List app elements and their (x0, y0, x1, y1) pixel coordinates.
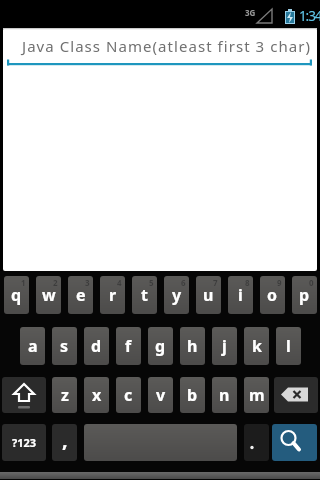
staticText: 6 (181, 277, 186, 288)
button[interactable] (274, 377, 318, 413)
button[interactable]: d (84, 327, 109, 365)
staticText: d (91, 335, 102, 357)
button[interactable]: g (148, 327, 173, 365)
button[interactable]: l (276, 327, 301, 365)
staticText: t (141, 284, 148, 306)
button[interactable]: s (52, 327, 77, 365)
button[interactable]: h (180, 327, 205, 365)
staticText: e (76, 284, 86, 306)
staticText: 2 (53, 277, 58, 288)
staticText: 7 (213, 277, 218, 288)
staticText: 4 (117, 277, 122, 288)
button[interactable]: b (180, 377, 205, 413)
staticText: k (252, 335, 262, 357)
staticText: 0 (309, 277, 314, 288)
staticText: n (219, 384, 230, 406)
staticText: 1 (21, 277, 26, 288)
button[interactable]: x (84, 377, 109, 413)
staticText: b (187, 384, 198, 406)
button[interactable]: p (292, 276, 317, 314)
staticText: w (42, 284, 56, 306)
staticText: 3G (245, 7, 256, 18)
button[interactable]: y (164, 276, 189, 314)
staticText: o (267, 284, 278, 306)
staticText: i (238, 284, 243, 306)
staticText: z (61, 384, 69, 406)
staticText: c (124, 384, 133, 406)
button[interactable]: a (20, 327, 45, 365)
staticText: f (125, 335, 132, 357)
button[interactable]: f (116, 327, 141, 365)
staticText: v (156, 384, 166, 406)
button[interactable]: q (4, 276, 29, 314)
staticText: x (92, 384, 102, 406)
button[interactable]: t (132, 276, 157, 314)
staticText: 9 (277, 277, 282, 288)
staticText: l (286, 335, 291, 357)
button[interactable]: m (244, 377, 269, 413)
button[interactable]: e (68, 276, 93, 314)
staticText: s (60, 335, 69, 357)
staticText: Java Class Name(atleast first 3 char) (22, 36, 311, 56)
button[interactable]: Java Class Name(atleast first 3 char) (3, 28, 317, 66)
staticText: 3 (85, 277, 90, 288)
button[interactable]: j (212, 327, 237, 365)
button[interactable] (84, 424, 237, 461)
staticText: q (11, 284, 22, 306)
staticText: h (187, 335, 198, 357)
button[interactable]: w (36, 276, 61, 314)
button[interactable]: o (260, 276, 285, 314)
staticText: u (203, 284, 214, 306)
staticText: g (155, 335, 166, 357)
button[interactable]: v (148, 377, 173, 413)
staticText: j (222, 335, 227, 357)
button[interactable]: z (52, 377, 77, 413)
button[interactable]: i (228, 276, 253, 314)
button[interactable]: k (244, 327, 269, 365)
staticText: y (172, 284, 182, 306)
staticText: 8 (245, 277, 250, 288)
button[interactable]: u (196, 276, 221, 314)
button[interactable] (2, 377, 46, 413)
staticText: m (249, 384, 265, 406)
button[interactable] (272, 424, 317, 461)
staticText: p (299, 284, 310, 306)
staticText: ?123 (12, 435, 37, 450)
staticText: , (62, 426, 68, 453)
button[interactable]: n (212, 377, 237, 413)
button[interactable]: , (52, 424, 77, 461)
button[interactable]: r (100, 276, 125, 314)
staticText: a (28, 335, 38, 357)
staticText: 1:34 (299, 7, 320, 25)
button[interactable]: ?123 (2, 424, 46, 461)
staticText: 5 (149, 277, 154, 288)
staticText: r (109, 284, 117, 306)
button[interactable]: c (116, 377, 141, 413)
button[interactable] (244, 424, 269, 461)
